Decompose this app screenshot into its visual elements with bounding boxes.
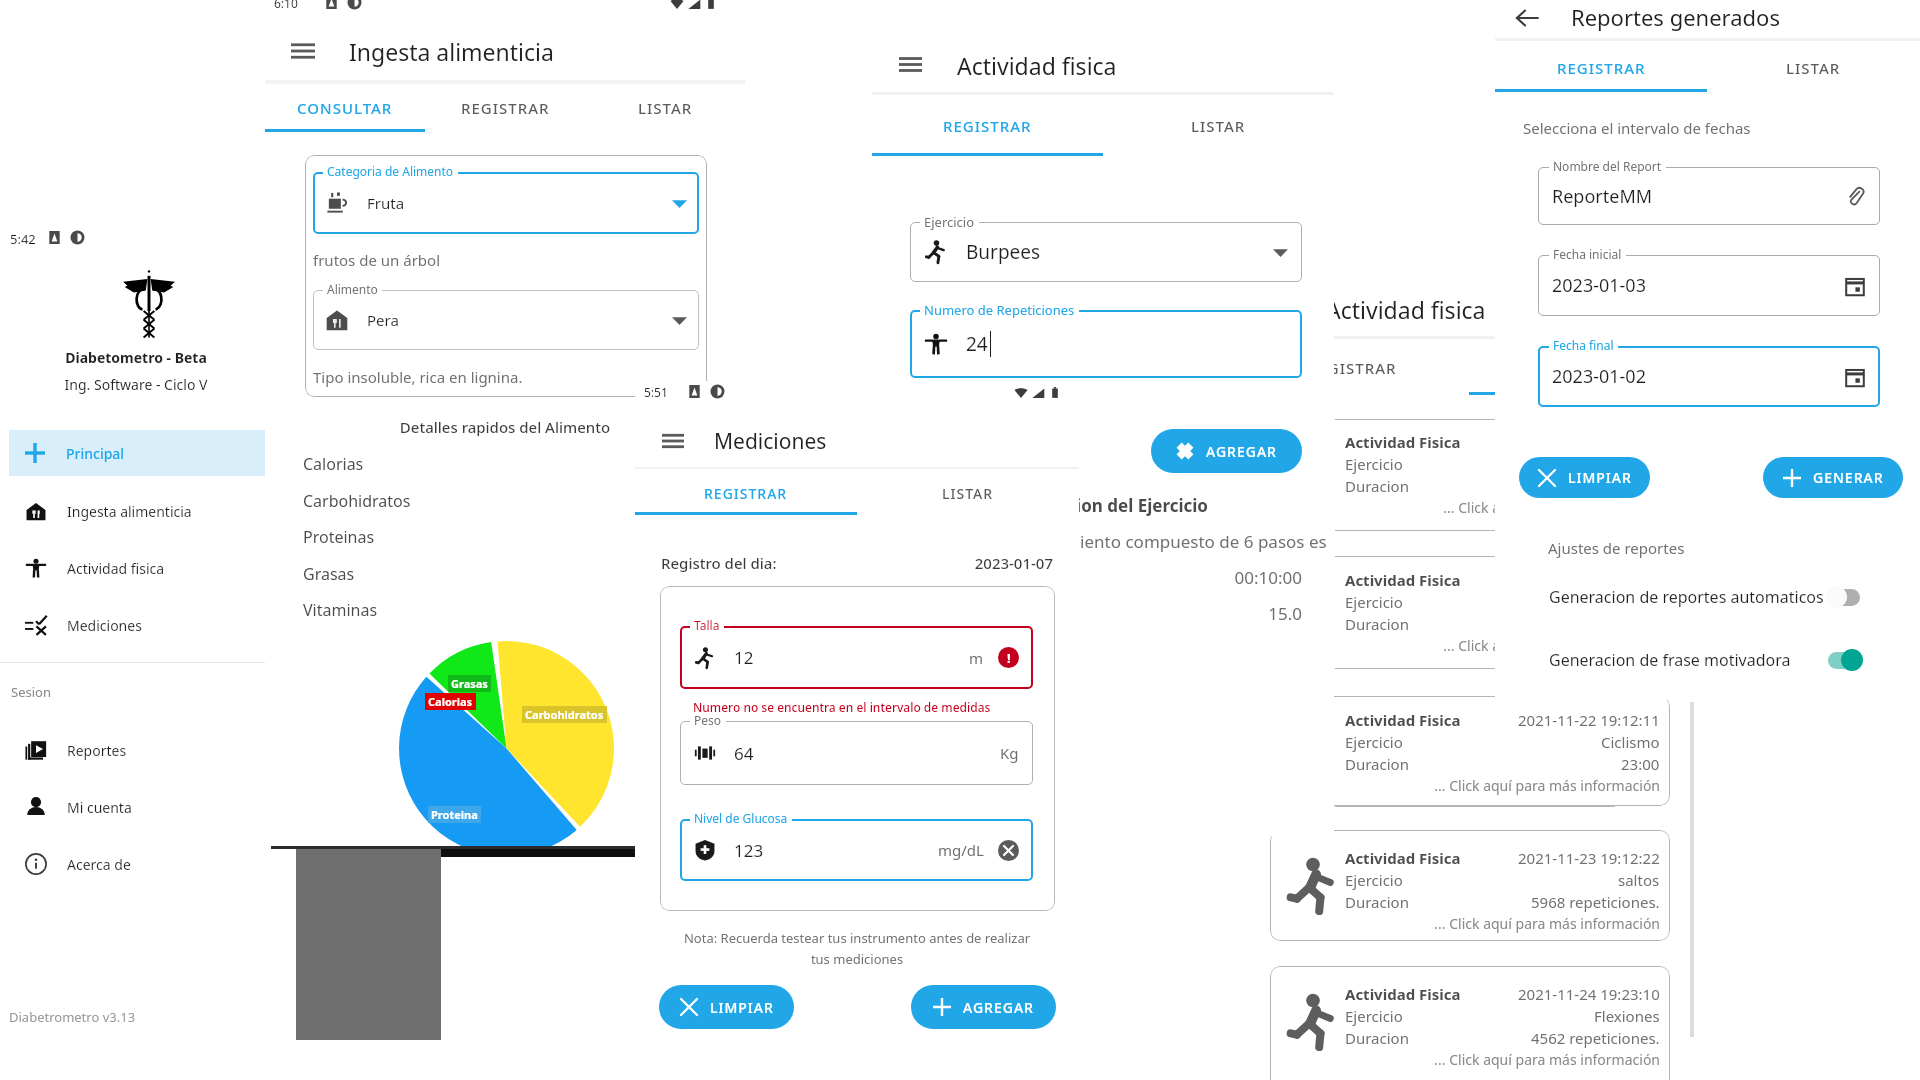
staticText: Mi cuenta xyxy=(67,798,132,817)
staticText: Ingesta alimenticia xyxy=(349,36,554,67)
staticText: AGREGAR xyxy=(963,998,1034,1017)
staticText: Duracion xyxy=(1345,892,1409,912)
button[interactable]: Fruta xyxy=(325,172,687,234)
button[interactable] xyxy=(1538,346,1880,407)
staticText: Actividad Fisica xyxy=(1345,570,1461,590)
staticText: Actividad Fisica xyxy=(1345,984,1461,1004)
staticText: REGISTRAR xyxy=(943,116,1032,136)
button[interactable]: LISTAR xyxy=(1103,96,1334,156)
staticText: Carbohidratos xyxy=(303,490,411,512)
button[interactable]: Abrir menu xyxy=(894,48,926,80)
button[interactable]: Generacion de reportes automaticos xyxy=(1549,584,1863,610)
staticText: 2023-01-03 xyxy=(1552,273,1646,298)
staticText: CONSULTAR xyxy=(297,98,393,118)
button[interactable]: Ingesta alimenticia xyxy=(9,488,270,534)
button[interactable]: Abrir menu xyxy=(658,426,688,456)
staticText: Generacion de reportes automaticos xyxy=(1549,586,1824,608)
staticText: Ciclismo xyxy=(1601,732,1660,752)
button[interactable]: Mi cuenta xyxy=(9,784,270,830)
button[interactable]: AGREGAR xyxy=(1151,429,1302,473)
staticText: Reportes xyxy=(67,741,127,760)
button[interactable]: Borrar xyxy=(998,840,1019,861)
button[interactable]: LISTAR xyxy=(585,84,745,132)
staticText: Flexiones xyxy=(1594,1006,1660,1026)
staticText: Duracion xyxy=(1345,614,1409,634)
staticText: Mediciones xyxy=(714,427,827,456)
staticText: tus mediciones xyxy=(635,950,1079,968)
button[interactable]: Actividad fisica xyxy=(9,545,270,591)
button[interactable]: CONSULTAR xyxy=(265,84,425,132)
staticText: Talla xyxy=(694,617,720,633)
staticText: Proteinas xyxy=(303,526,375,548)
staticText: saltos xyxy=(1618,870,1660,890)
button[interactable]: GENERAR xyxy=(1763,457,1903,498)
staticText: GENERAR xyxy=(1813,468,1884,487)
button[interactable]: Acerca de xyxy=(9,841,270,887)
button[interactable]: REGISTRAR xyxy=(872,96,1103,156)
staticText: Actividad Fisica xyxy=(1345,432,1461,452)
button[interactable] xyxy=(1270,966,1670,1080)
staticText: REGISTRAR xyxy=(1308,358,1397,378)
staticText: Ajustes de reportes xyxy=(1548,538,1685,558)
staticText: ... Click aquí para más información xyxy=(1345,914,1660,933)
staticText: Calorias xyxy=(428,694,473,709)
button[interactable]: Actividad Fisica xyxy=(1345,570,1679,655)
button[interactable]: Generacion de frase motivadora xyxy=(1549,647,1863,673)
button[interactable] xyxy=(1538,255,1880,316)
staticText: LISTAR xyxy=(638,98,693,118)
staticText: 123 xyxy=(734,839,764,862)
staticText: Carbohidratos xyxy=(525,707,604,722)
staticText: Ingesta alimenticia xyxy=(67,502,192,521)
staticText: Acerca de xyxy=(67,855,131,874)
staticText: Numero de Repeticiones xyxy=(924,301,1075,319)
staticText: Duracion xyxy=(1345,1028,1409,1048)
staticText: ReporteMM xyxy=(1552,184,1653,209)
button[interactable]: REGISTRAR xyxy=(635,471,857,515)
button[interactable]: AGREGAR xyxy=(911,985,1056,1029)
staticText: Vitaminas xyxy=(303,599,378,621)
staticText: m xyxy=(969,648,984,668)
button[interactable]: Actividad Fisica xyxy=(1345,432,1679,517)
staticText: Numero no se encuentra en el intervalo d… xyxy=(693,699,991,715)
button[interactable]: LISTAR xyxy=(857,471,1079,515)
staticText: 23:00 xyxy=(1621,754,1660,774)
button[interactable]: Mediciones xyxy=(9,602,270,648)
button[interactable]: REGISTRAR xyxy=(425,84,585,132)
staticText: Alimento xyxy=(327,281,378,297)
staticText: 5:42 xyxy=(10,230,36,248)
staticText: Duracion xyxy=(1345,754,1409,774)
staticText: Kg xyxy=(1000,743,1019,763)
button[interactable]: Pera xyxy=(325,290,687,350)
button[interactable]: LISTAR xyxy=(1707,44,1920,92)
button[interactable] xyxy=(1538,167,1880,225)
button[interactable]: Abrir menu xyxy=(287,35,319,67)
staticText: 2021-11-23 19:12:22 xyxy=(1518,848,1660,868)
button[interactable]: Burpees xyxy=(924,222,1288,282)
staticText: 2021-11-22 19:12:11 xyxy=(1518,710,1660,730)
staticText: Proteina xyxy=(431,807,478,822)
staticText: Detalles rapidos del Alimento xyxy=(265,417,745,437)
button[interactable]: REGISTRAR xyxy=(1495,44,1707,92)
button[interactable]: Principal xyxy=(9,430,270,476)
staticText: Burpees xyxy=(966,239,1041,265)
button[interactable]: Reportes xyxy=(9,727,270,773)
staticText: Ejercicio xyxy=(924,213,975,231)
button[interactable] xyxy=(1270,830,1670,941)
staticText: ... Click aquí para más información xyxy=(1345,636,1669,655)
staticText: Categoria de Alimento xyxy=(327,163,454,179)
staticText: LISTAR xyxy=(1191,116,1246,136)
staticText: Duracion xyxy=(1345,476,1409,496)
staticText: Registro del dia: xyxy=(661,553,777,573)
button[interactable] xyxy=(1270,696,1670,806)
button[interactable]: LIMPIAR xyxy=(1519,457,1650,498)
staticText: 5968 repeticiones. xyxy=(1531,892,1660,912)
staticText: 64 xyxy=(734,742,754,765)
staticText: Nivel de Glucosa xyxy=(694,810,788,826)
button[interactable]: LIMPIAR xyxy=(659,985,794,1029)
staticText: Actividad fisica xyxy=(1326,294,1486,325)
staticText: Calorias xyxy=(303,453,364,475)
button[interactable]: Volver xyxy=(1509,0,1545,36)
staticText: LIMPIAR xyxy=(710,998,774,1017)
staticText: Ejercicio xyxy=(1345,870,1403,890)
staticText: Tipo insoluble, rica en lignina. xyxy=(313,367,523,387)
